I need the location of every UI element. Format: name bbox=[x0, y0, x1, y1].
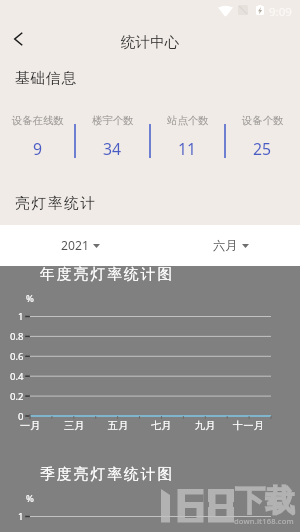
staticText: 九月 bbox=[195, 419, 216, 432]
button[interactable]: Back bbox=[4, 25, 32, 53]
staticText: 25 bbox=[253, 138, 272, 160]
staticText: 设备在线数 bbox=[12, 114, 64, 127]
staticText: 五月 bbox=[108, 419, 129, 432]
staticText: 1 bbox=[18, 510, 24, 523]
staticText: 统计中心 bbox=[121, 33, 180, 51]
staticText: down.it168.com bbox=[234, 516, 294, 526]
staticText: 基础信息 bbox=[15, 69, 77, 87]
button[interactable]: 站点个数 bbox=[150, 105, 225, 160]
staticText: 0.4 bbox=[10, 370, 24, 383]
staticText: % bbox=[26, 492, 34, 505]
button[interactable]: 六月 bbox=[193, 225, 268, 266]
button[interactable]: 2021 bbox=[43, 225, 118, 266]
staticText: 一月 bbox=[20, 419, 41, 432]
staticText: 七月 bbox=[151, 419, 172, 432]
button[interactable]: 楼宇个数 bbox=[75, 105, 150, 160]
staticText: 下载 bbox=[235, 482, 295, 520]
staticText: % bbox=[26, 292, 34, 305]
staticText: 9:09 bbox=[269, 4, 292, 20]
staticText: 0.8 bbox=[10, 330, 24, 343]
button[interactable]: 设备个数 bbox=[225, 105, 300, 160]
staticText: 年度亮灯率统计图 bbox=[40, 265, 175, 284]
staticText: 11 bbox=[178, 138, 197, 160]
staticText: 9 bbox=[33, 138, 43, 160]
staticText: 三月 bbox=[64, 419, 85, 432]
staticText: 0 bbox=[18, 410, 24, 423]
staticText: 1 bbox=[18, 310, 24, 323]
staticText: 六月 bbox=[213, 238, 238, 253]
staticText: 设备个数 bbox=[242, 114, 284, 127]
staticText: 0.2 bbox=[10, 390, 24, 403]
staticText: 站点个数 bbox=[167, 114, 209, 127]
staticText: 十一月 bbox=[233, 419, 265, 432]
staticText: 0.6 bbox=[10, 350, 24, 363]
button[interactable]: 设备在线数 bbox=[0, 105, 75, 160]
staticText: 2021 bbox=[61, 237, 89, 254]
staticText: 34 bbox=[103, 138, 122, 160]
staticText: 楼宇个数 bbox=[92, 114, 134, 127]
staticText: 亮灯率统计 bbox=[15, 194, 97, 212]
staticText: 季度亮灯率统计图 bbox=[40, 465, 175, 484]
